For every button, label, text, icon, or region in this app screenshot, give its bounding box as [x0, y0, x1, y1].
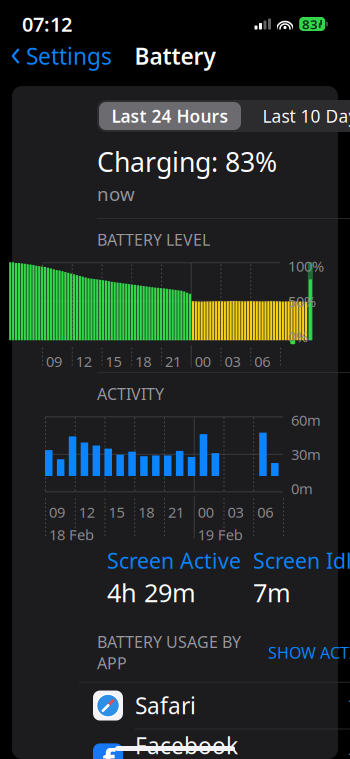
staticText: ACTIVITY [97, 383, 164, 404]
button[interactable]: SHOW ACTIVITY [268, 642, 350, 663]
staticText: f [102, 739, 114, 759]
staticText: 07:12 [22, 11, 72, 37]
staticText: Screen Active [107, 546, 241, 575]
staticText: 60m [291, 410, 321, 430]
staticText: 18 [138, 502, 154, 522]
staticText: 83 [302, 15, 318, 33]
staticText: 03 [224, 351, 240, 371]
staticText: BATTERY LEVEL [97, 229, 210, 250]
button[interactable]: Settings [0, 35, 112, 77]
staticText: 00 [198, 502, 214, 522]
staticText: 09 [46, 351, 62, 371]
button[interactable]: Last 24 Hours [99, 102, 241, 130]
staticText: Settings [26, 41, 112, 71]
staticText: 06 [257, 502, 273, 522]
staticText: 19 Feb [198, 525, 243, 544]
staticText: 4h 29m [107, 576, 196, 609]
staticText: 03 [227, 502, 243, 522]
staticText: now [97, 181, 135, 206]
staticText: 18 Feb [49, 525, 94, 544]
staticText: Safari [135, 690, 196, 721]
staticText: 0% [288, 327, 308, 346]
staticText: 30m [291, 445, 321, 464]
staticText: 7m [253, 576, 291, 609]
staticText: Last 10 Days [262, 104, 350, 127]
staticText: 15 [105, 351, 121, 371]
button[interactable]: f [79, 729, 350, 759]
button[interactable]: Last 10 Days [243, 102, 350, 130]
staticText: 15 [108, 502, 124, 522]
staticText: 21 [168, 502, 184, 522]
staticText: 21 [165, 351, 181, 371]
staticText: Battery [134, 41, 215, 71]
staticText: 12% [347, 744, 350, 759]
staticText: 17% [347, 691, 350, 720]
staticText: 00 [195, 351, 211, 371]
staticText: Facebook [135, 730, 238, 759]
staticText: 09 [49, 502, 65, 522]
staticText: Screen Idle [253, 546, 350, 575]
button[interactable]: Safari [79, 683, 350, 729]
staticText: 100% [288, 256, 324, 276]
staticText: SHOW ACTIVITY [268, 642, 350, 663]
staticText: BATTERY USAGE BY APP [97, 631, 241, 674]
staticText: Charging: 83% [97, 144, 277, 179]
staticText: 12 [76, 351, 92, 371]
staticText: 12 [79, 502, 95, 522]
staticText: 06 [254, 351, 270, 371]
staticText: 0m [291, 479, 313, 498]
staticText: 50% [288, 291, 316, 311]
staticText: Last 24 Hours [111, 104, 228, 127]
staticText: 18 [135, 351, 151, 371]
